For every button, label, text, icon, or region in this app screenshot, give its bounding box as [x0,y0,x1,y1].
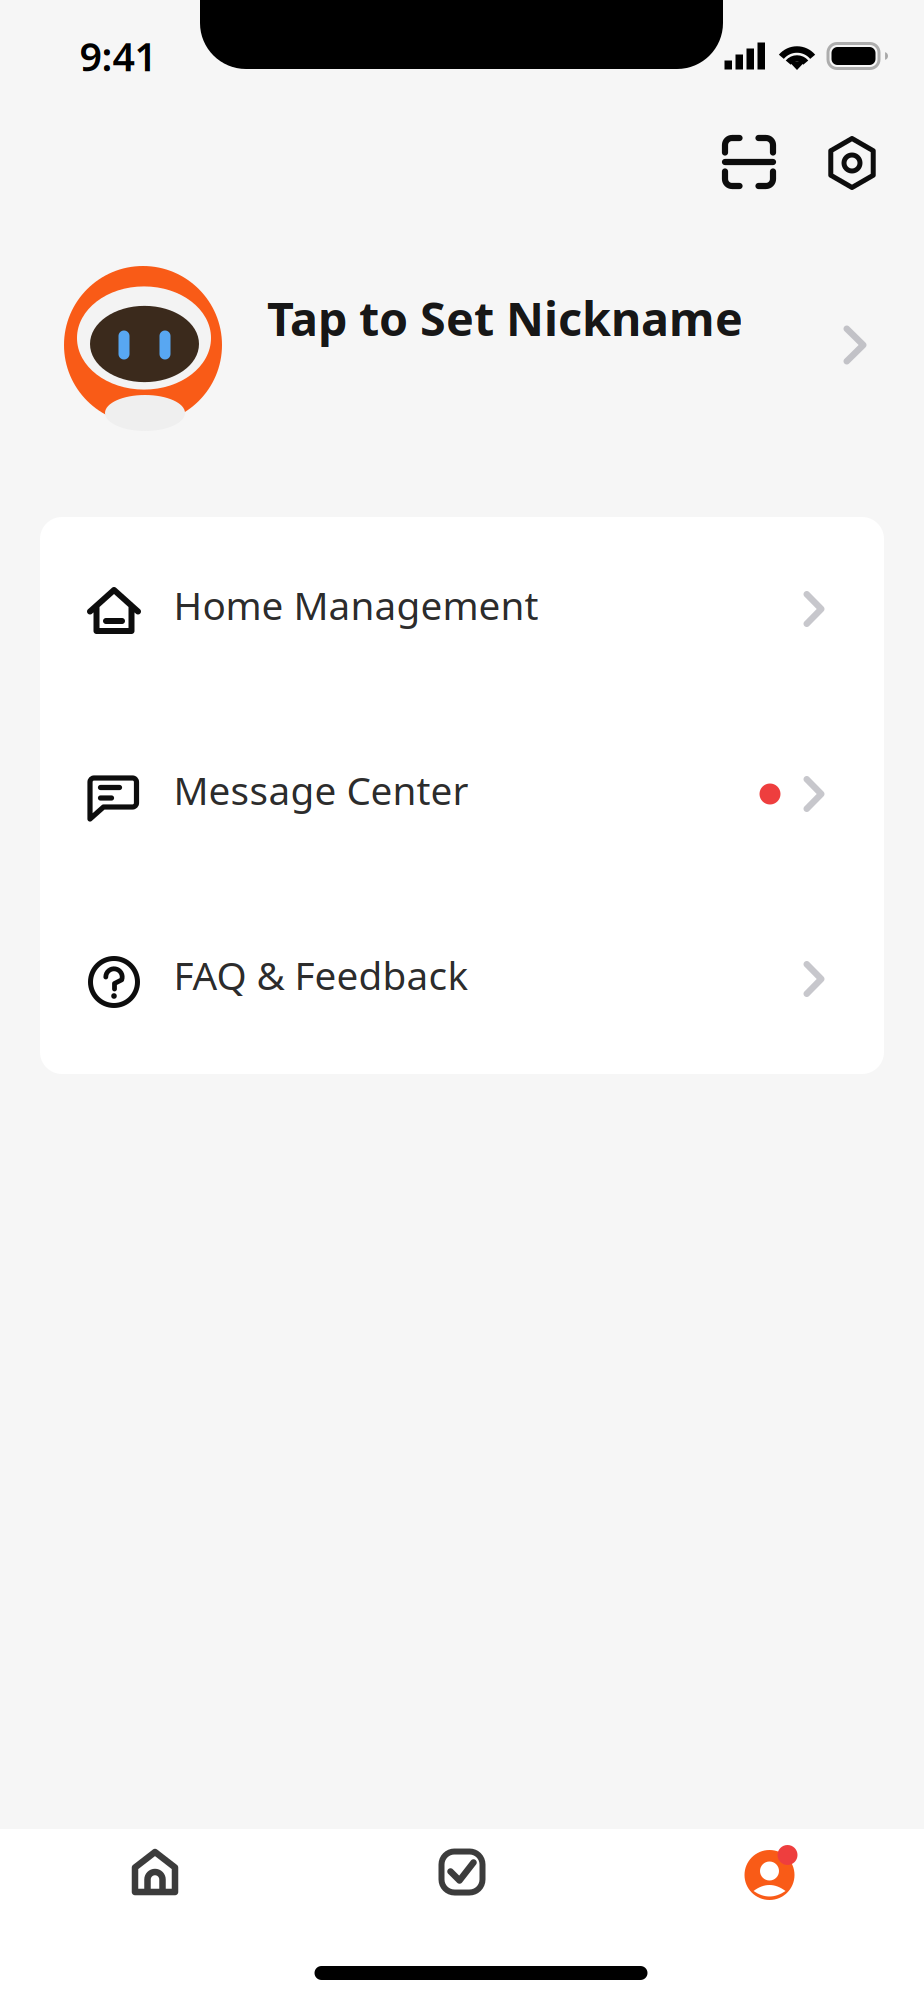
button[interactable]: Message Center [40,702,884,887]
staticText: FAQ & Feedback [173,949,468,1001]
staticText: Message Center [173,764,468,816]
staticText: Tap to Set Nickname [267,287,743,349]
button[interactable]: Home [80,1822,230,1922]
button[interactable]: Settings [810,121,894,205]
button[interactable]: Tasks [387,1822,537,1922]
button[interactable]: Tap to Set Nickname [0,250,924,436]
button[interactable]: FAQ & Feedback [40,887,884,1072]
button[interactable]: Profile [695,1822,845,1922]
button[interactable]: Home Management [40,517,884,702]
button[interactable]: Scan [707,120,791,204]
staticText: Home Management [173,579,538,631]
staticText: 9:41 [79,30,156,82]
